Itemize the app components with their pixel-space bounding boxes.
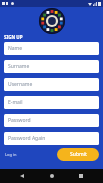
button[interactable]: Submit (57, 148, 99, 161)
staticText: Password (8, 117, 31, 124)
button[interactable]: Back (15, 169, 29, 183)
button[interactable]: Password Again (4, 132, 99, 145)
button[interactable]: Recent apps (74, 169, 88, 183)
staticText: Log in (5, 152, 17, 157)
button[interactable]: Password (4, 114, 99, 127)
staticText: Name (8, 45, 23, 52)
staticText: Username (8, 81, 33, 88)
staticText: E-mail (8, 99, 23, 106)
staticText: Surname (8, 63, 30, 70)
button[interactable]: E-mail (4, 96, 99, 109)
staticText: Submit (70, 151, 87, 158)
button[interactable]: Home (45, 169, 59, 183)
button[interactable]: Log in (4, 150, 18, 159)
staticText: Password Again (8, 135, 46, 142)
staticText: SIGN UP (4, 34, 23, 40)
button[interactable]: Surname (4, 60, 99, 73)
button[interactable]: Username (4, 78, 99, 91)
button[interactable]: Name (4, 42, 99, 55)
